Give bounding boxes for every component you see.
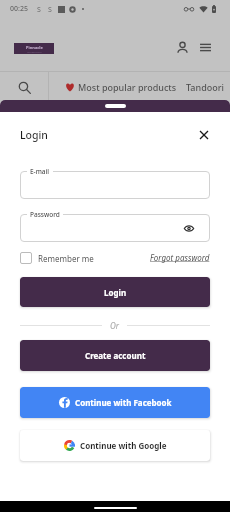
staticText: Remember me	[38, 253, 94, 264]
staticText: Forgot password	[150, 252, 210, 263]
staticText: Tandoori S	[186, 81, 230, 93]
button[interactable]	[20, 171, 210, 199]
button[interactable]: Continue with Google	[20, 430, 210, 461]
staticText: Login	[20, 128, 48, 142]
button[interactable]: Close	[196, 127, 212, 143]
button[interactable]: Search	[0, 72, 48, 102]
staticText: marketplace	[27, 50, 42, 53]
staticText: S	[48, 5, 52, 13]
staticText: Pinnacle	[26, 45, 43, 50]
staticText: Or	[110, 320, 119, 331]
staticText: Password	[30, 210, 60, 219]
staticText: Continue with Facebook	[75, 397, 172, 408]
staticText: E-mail	[30, 167, 50, 176]
staticText: Create account	[85, 350, 146, 361]
button[interactable]: Menu	[194, 39, 216, 55]
button[interactable]: Create account	[20, 340, 210, 371]
staticText: S	[37, 5, 41, 13]
button[interactable]	[20, 214, 210, 242]
button[interactable]: Account	[171, 39, 193, 55]
staticText: Login	[104, 287, 127, 298]
staticText: Most popular products	[78, 81, 177, 93]
staticText: Continue with Google	[80, 440, 167, 451]
button[interactable]: Remember me	[20, 252, 94, 264]
button[interactable]: Login	[20, 277, 210, 307]
button[interactable]: Forgot password	[150, 252, 210, 263]
button[interactable]: Logo	[14, 43, 54, 54]
button[interactable]: Continue with Facebook	[20, 387, 210, 418]
staticText: 00:25	[10, 4, 28, 14]
